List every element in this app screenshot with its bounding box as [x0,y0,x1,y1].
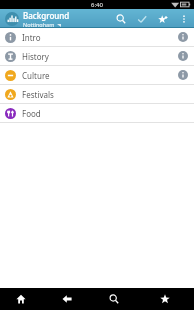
staticText: Background [23,10,70,21]
button[interactable]: Info about Intro [172,28,194,46]
button[interactable]: Info about Culture [172,66,194,84]
staticText: History [22,51,49,62]
button[interactable]: Search [110,9,131,28]
button[interactable]: Back [41,288,92,310]
staticText: Intro [22,32,41,43]
button[interactable]: Bookmarks [135,288,194,310]
button[interactable]: History [0,47,194,65]
button[interactable]: App logo, up [2,9,22,28]
button[interactable]: Favorite [152,9,173,28]
staticText: 6:40 [91,1,103,9]
staticText: Food [22,108,41,119]
button[interactable]: Food [0,104,194,122]
staticText: Culture [22,70,50,81]
button[interactable]: Home [0,288,41,310]
button[interactable]: Culture [0,66,194,84]
staticText: Nottingham [23,21,55,28]
button[interactable]: Festivals [0,85,194,103]
button[interactable]: Search [92,288,135,310]
button[interactable]: Info about History [172,47,194,65]
button[interactable]: Edit [131,9,152,28]
button[interactable]: More options [173,9,194,28]
button[interactable]: Intro [0,28,194,46]
staticText: Festivals [22,89,54,100]
